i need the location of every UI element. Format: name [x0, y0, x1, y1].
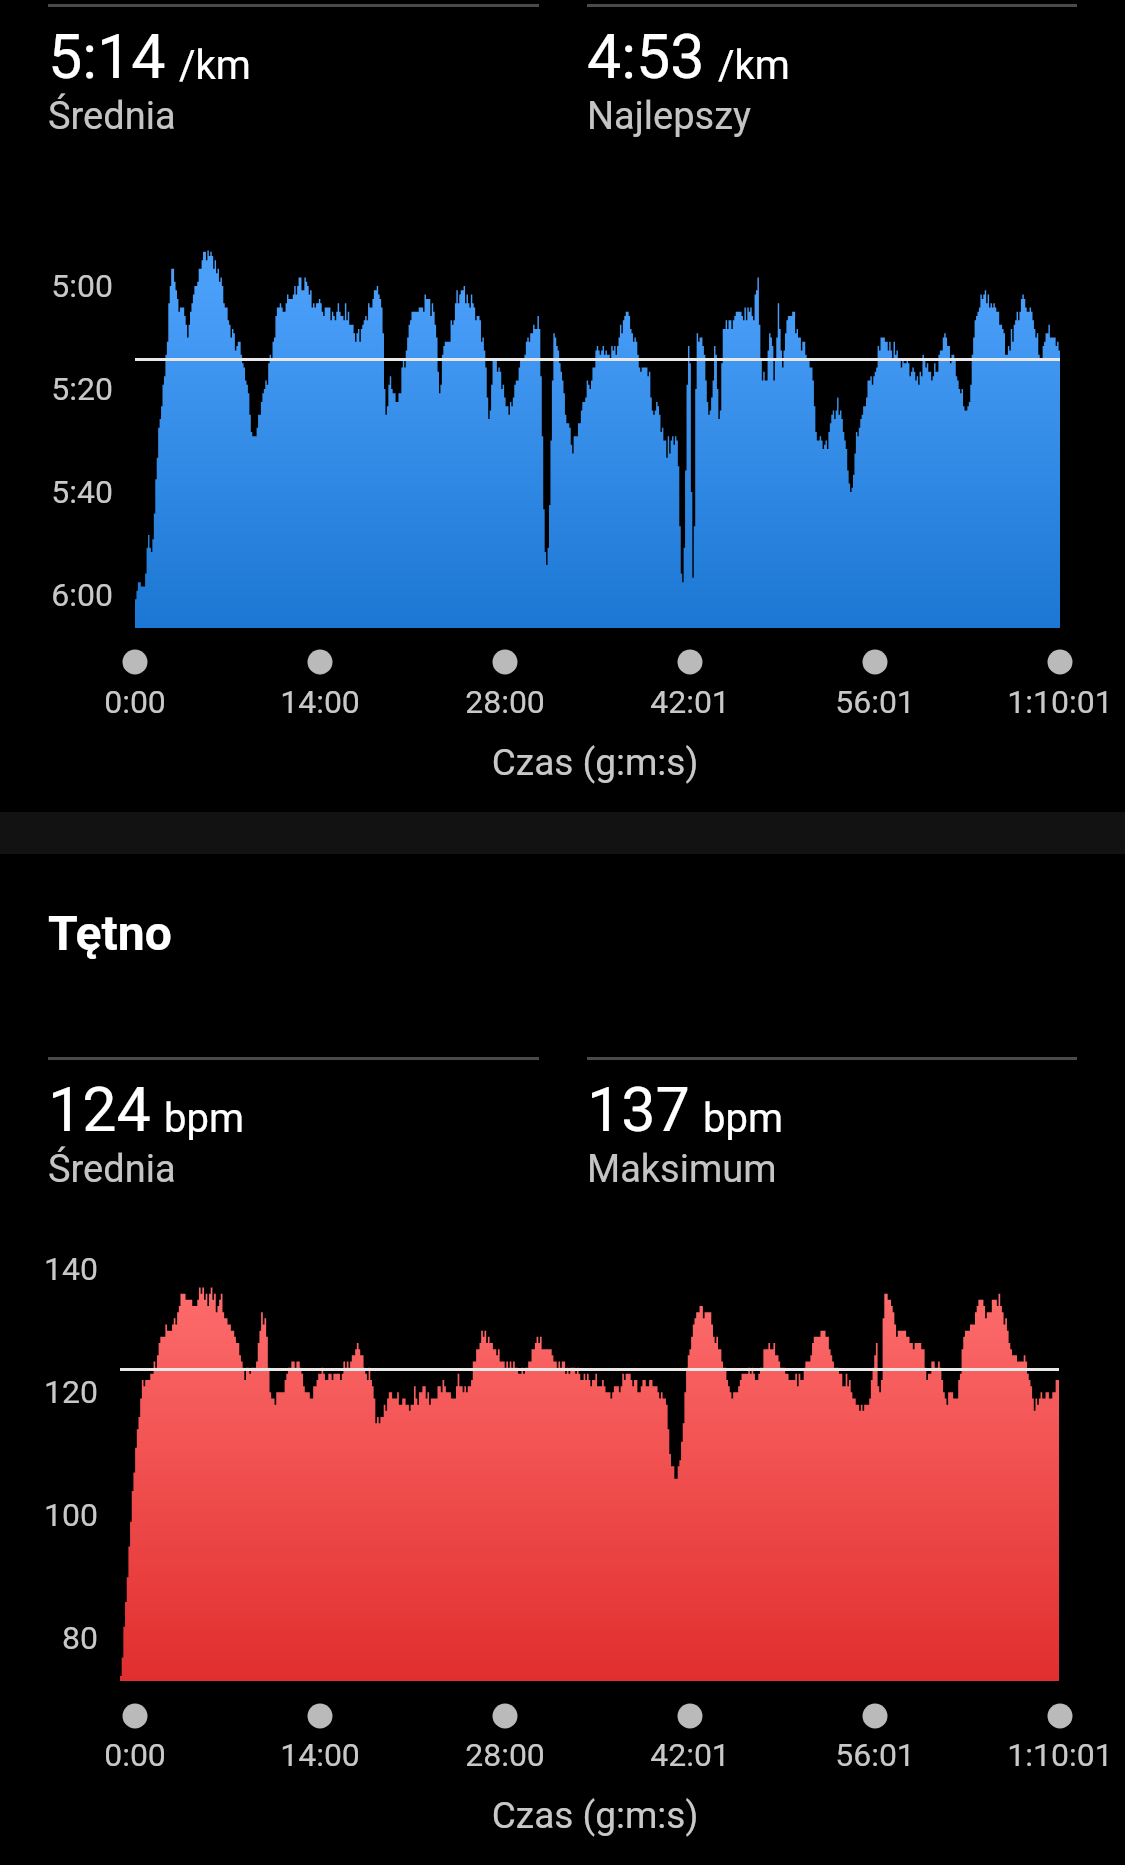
staticText: 100 [0, 1496, 98, 1534]
staticText: 5:40 [0, 473, 113, 511]
staticText: bpm [164, 1095, 244, 1142]
staticText: 5:00 [0, 267, 113, 305]
button[interactable]: 5:14 [48, 4, 539, 132]
staticText: Czas (g:m:s) [295, 741, 895, 784]
staticText: Najlepszy [587, 94, 752, 139]
staticText: 0:00 [15, 683, 255, 721]
staticText: 28:00 [385, 1736, 625, 1774]
staticText: /km [718, 42, 790, 89]
staticText: 120 [0, 1373, 98, 1411]
button[interactable]: 124 [48, 1057, 539, 1185]
staticText: 28:00 [385, 683, 625, 721]
button[interactable]: 4:53 [587, 4, 1077, 132]
staticText: 5:20 [0, 370, 113, 408]
staticText: 1:10:01 [940, 1736, 1125, 1774]
staticText: Średnia [48, 94, 176, 139]
button[interactable]: Wykres tempa [48, 240, 1077, 640]
button[interactable]: Tętno [48, 900, 248, 966]
staticText: 0:00 [15, 1736, 255, 1774]
button[interactable]: Wykres tętna [48, 1240, 1077, 1690]
staticText: 42:01 [570, 683, 810, 721]
staticText: 6:00 [0, 576, 113, 614]
button[interactable]: 137 [587, 1057, 1077, 1185]
staticText: 5:14 [48, 21, 166, 92]
staticText: 56:01 [755, 683, 995, 721]
staticText: /km [179, 42, 251, 89]
staticText: bpm [703, 1095, 783, 1142]
staticText: 124 [48, 1074, 151, 1145]
staticText: 42:01 [570, 1736, 810, 1774]
staticText: Czas (g:m:s) [295, 1794, 895, 1837]
staticText: 14:00 [200, 1736, 440, 1774]
staticText: 140 [0, 1250, 98, 1288]
staticText: Średnia [48, 1147, 176, 1192]
staticText: 56:01 [755, 1736, 995, 1774]
staticText: 4:53 [587, 21, 705, 92]
staticText: 137 [587, 1074, 690, 1145]
staticText: Tętno [48, 905, 172, 961]
staticText: Maksimum [587, 1147, 777, 1192]
staticText: 1:10:01 [940, 683, 1125, 721]
staticText: 14:00 [200, 683, 440, 721]
staticText: 80 [0, 1619, 98, 1657]
